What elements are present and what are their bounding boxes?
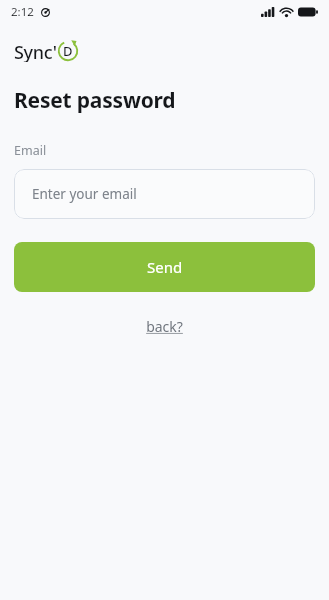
other: Sync'D logo <box>14 40 79 62</box>
staticText: 2:12 <box>11 4 34 20</box>
staticText: back? <box>146 317 183 336</box>
button[interactable]: back? <box>138 314 191 339</box>
staticText: Send <box>147 257 183 277</box>
button[interactable]: Send <box>14 242 315 292</box>
staticText: Reset password <box>14 86 176 115</box>
staticText: D <box>63 42 73 60</box>
button[interactable]: Enter your email <box>14 169 315 219</box>
staticText: Sync' <box>14 40 57 62</box>
staticText: Email <box>14 142 47 159</box>
staticText: Enter your email <box>32 185 137 203</box>
